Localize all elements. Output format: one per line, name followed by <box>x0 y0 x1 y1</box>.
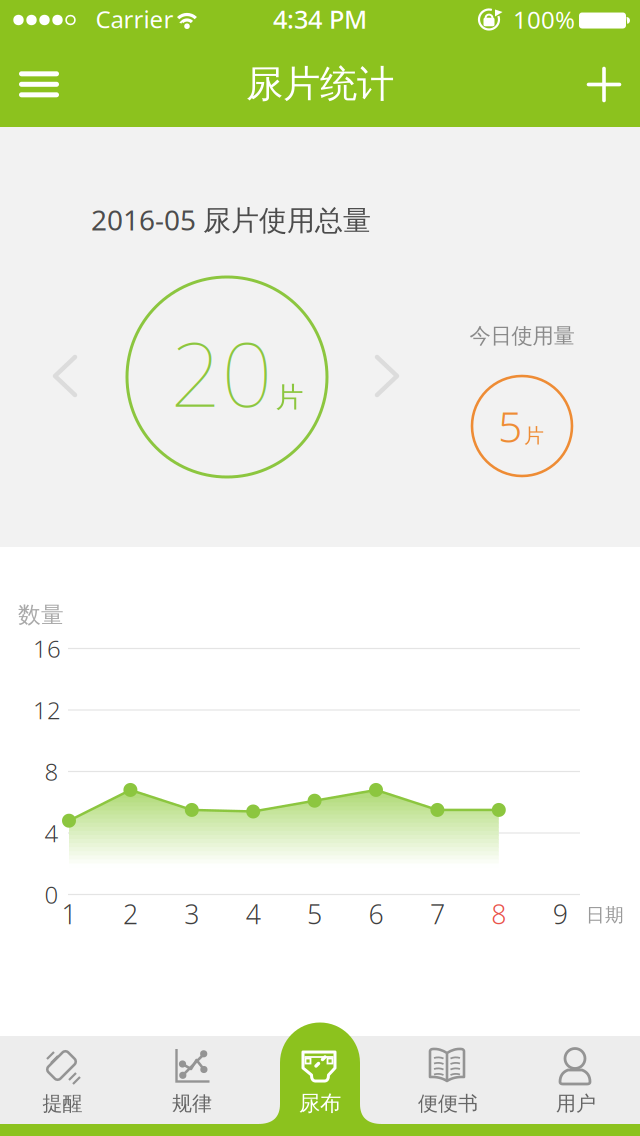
button[interactable]: Next month <box>0 0 640 1136</box>
staticText: 提醒 <box>42 1091 82 1116</box>
button[interactable]: 用户 <box>0 0 640 1136</box>
staticText: 片 <box>275 380 303 414</box>
staticText: 8 <box>44 756 58 787</box>
staticText: 6 <box>368 896 383 932</box>
staticText: 100% <box>513 4 575 35</box>
staticText: 8 <box>491 896 506 932</box>
staticText: 今日使用量 <box>469 323 574 349</box>
staticText: 数量 <box>18 601 64 629</box>
staticText: 7 <box>430 896 445 932</box>
staticText: 尿布 <box>299 1090 341 1117</box>
staticText: 16 <box>33 633 61 664</box>
staticText: 4 <box>246 896 261 932</box>
staticText: 4:34 PM <box>273 2 367 36</box>
staticText: 9 <box>553 896 568 932</box>
button[interactable]: 提醒 <box>0 0 640 1136</box>
staticText: 尿片统计 <box>246 61 394 107</box>
staticText: 2 <box>123 896 138 932</box>
staticText: 0 <box>44 879 58 910</box>
staticText: 20 <box>170 313 272 431</box>
button[interactable]: 尿布 <box>0 0 640 1136</box>
staticText: 片 <box>524 424 544 448</box>
staticText: 5 <box>498 398 522 454</box>
staticText: 3 <box>184 896 199 932</box>
button[interactable]: 便便书 <box>0 0 640 1136</box>
staticText: 4 <box>44 817 58 849</box>
button[interactable]: 规律 <box>0 0 640 1136</box>
button[interactable]: Previous month <box>0 0 640 1136</box>
staticText: 用户 <box>556 1091 596 1116</box>
staticText: 1 <box>61 896 76 932</box>
staticText: Carrier <box>95 3 173 35</box>
staticText: 12 <box>33 694 61 726</box>
staticText: 便便书 <box>418 1091 478 1116</box>
staticText: 规律 <box>172 1091 212 1116</box>
button[interactable]: Add <box>0 0 640 1136</box>
staticText: 日期 <box>586 903 624 926</box>
staticText: 5 <box>307 896 322 932</box>
button[interactable]: Menu <box>0 0 640 1136</box>
staticText: 2016-05 尿片使用总量 <box>91 201 371 238</box>
